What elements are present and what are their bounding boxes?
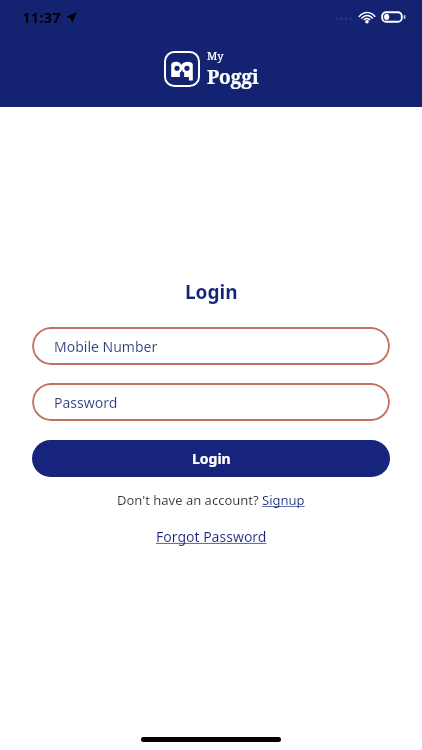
staticText: Password	[54, 393, 118, 412]
button[interactable]: Forgot Password	[0, 527, 422, 546]
staticText: My	[207, 48, 224, 63]
staticText: Login	[192, 449, 231, 468]
staticText: 11:37	[22, 7, 61, 27]
staticText: Forgot Password	[156, 527, 267, 546]
staticText: Don't have an account? Signup	[117, 491, 305, 509]
button[interactable]: Password	[32, 383, 390, 421]
button[interactable]: Login	[32, 440, 390, 477]
staticText: Mobile Number	[54, 337, 158, 356]
staticText: Poggi	[207, 64, 259, 90]
button[interactable]: Don't have an account? Signup	[0, 491, 422, 509]
other: My Poggi logo	[164, 51, 200, 87]
staticText: Login	[185, 279, 238, 305]
button[interactable]: Mobile Number	[32, 327, 390, 365]
